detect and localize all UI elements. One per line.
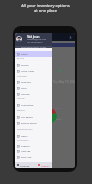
button[interactable]: GST Report [15,114,52,120]
staticText: Thu, May 9 8, 2024 [53,80,75,84]
staticText: Nick Jonas [27,35,40,38]
staticText: MY ACCOUNT [17,139,29,141]
staticText: Home [21,53,28,56]
button[interactable]: Of Estimate [15,102,52,108]
staticText: Sales [55,107,61,110]
staticText: Of Estimate [21,104,34,107]
staticText: INVENTORY [17,75,27,77]
button[interactable]: Support [15,143,52,149]
button[interactable]: New Age [15,148,52,154]
staticText: Subscription ends in 12 days [21,46,47,48]
button[interactable]: Logout [38,162,52,168]
staticText: Inventory [21,81,32,84]
staticText: New Age [21,150,31,153]
staticText: BILLING [17,57,24,59]
staticText: Profit [56,118,62,121]
staticText: Settings [20,164,30,167]
button[interactable]: Transfer [15,91,52,97]
staticText: GST Report [21,116,33,119]
button[interactable]: Stock [15,85,52,91]
staticText: Credit Notes [21,70,35,73]
button[interactable]: Home [15,51,52,57]
staticText: COMMUNICATION [17,128,33,130]
staticText: at one place [34,8,57,13]
button[interactable]: Balance Report [15,120,52,126]
staticText: REPORTS [17,109,25,111]
button[interactable]: Store Age [15,154,52,160]
staticText: Support [21,145,30,148]
staticText: Offers [21,135,28,138]
button[interactable]: Credit Notes [15,68,52,74]
staticText: Stock [21,87,27,90]
button[interactable]: Inventory [15,79,52,85]
button[interactable]: Offers [15,133,52,139]
staticText: Balance Report [21,122,38,125]
staticText: Transfer [21,93,30,96]
staticText: Logout [41,164,50,167]
staticText: MANAGE [17,97,25,99]
staticText: nickjonas@mail.com [27,38,47,41]
staticText: All your inventory options [21,3,70,8]
button[interactable]: Invoice [15,62,52,68]
staticText: Store Age [21,156,32,159]
button[interactable]: Settings [15,162,38,168]
staticText: Invoice [21,64,29,67]
staticText: +91 9876543210 [27,41,43,44]
other: Profile [69,36,72,39]
